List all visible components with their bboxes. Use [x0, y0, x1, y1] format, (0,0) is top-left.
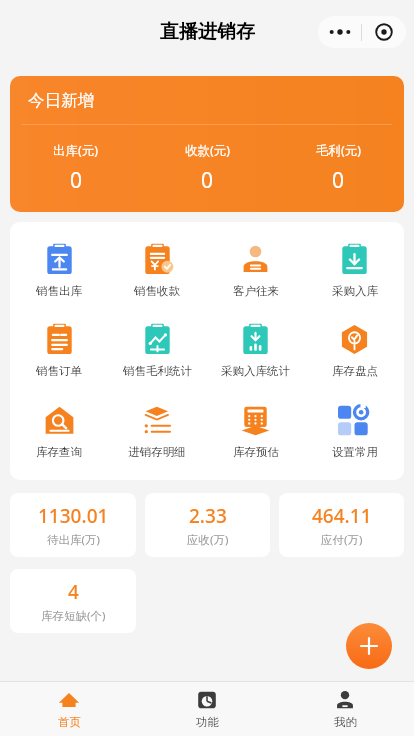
staticText: 销售收款: [134, 284, 180, 298]
button[interactable]: 销售出库: [10, 230, 108, 310]
button[interactable]: 库存盘点: [305, 310, 404, 391]
button[interactable]: 库存预估: [206, 391, 305, 472]
staticText: 直播进销存: [160, 20, 255, 44]
button[interactable]: 我的: [276, 682, 414, 736]
staticText: 设置常用: [332, 445, 378, 459]
button[interactable]: 2.33: [145, 493, 270, 557]
staticText: 库存盘点: [332, 364, 378, 378]
button[interactable]: 销售收款: [108, 230, 206, 310]
staticText: 库存查询: [36, 445, 82, 459]
staticText: 应收(万): [187, 532, 229, 548]
staticText: 464.11: [312, 503, 372, 529]
staticText: 库存短缺(个): [41, 608, 106, 624]
staticText: 客户往来: [233, 284, 279, 298]
button[interactable]: 464.11: [279, 493, 404, 557]
button[interactable]: More options: [318, 16, 361, 48]
staticText: 0: [332, 166, 345, 195]
staticText: 进销存明细: [128, 445, 186, 459]
staticText: 库存预估: [233, 445, 279, 459]
staticText: 采购入库: [332, 284, 378, 298]
staticText: 出库(元): [53, 142, 99, 159]
staticText: 0: [201, 166, 214, 195]
staticText: 销售订单: [36, 364, 82, 378]
button[interactable]: 库存查询: [10, 391, 108, 472]
button[interactable]: 功能: [138, 682, 276, 736]
button[interactable]: 1130.01: [10, 493, 136, 557]
button[interactable]: 今日新增: [10, 76, 404, 212]
button[interactable]: 销售毛利统计: [108, 310, 206, 391]
button[interactable]: 采购入库: [305, 230, 404, 310]
button[interactable]: 4: [10, 569, 136, 633]
staticText: 功能: [196, 715, 219, 729]
staticText: 待出库(万): [47, 532, 100, 548]
button[interactable]: 设置常用: [305, 391, 404, 472]
staticText: 1130.01: [38, 503, 109, 529]
button[interactable]: 采购入库统计: [206, 310, 305, 391]
staticText: 采购入库统计: [221, 364, 290, 378]
staticText: 销售出库: [36, 284, 82, 298]
button[interactable]: 销售订单: [10, 310, 108, 391]
staticText: 应付(万): [321, 532, 363, 548]
staticText: 今日新增: [28, 90, 94, 111]
staticText: 我的: [334, 715, 357, 729]
staticText: 0: [70, 166, 83, 195]
staticText: 2.33: [189, 503, 227, 529]
staticText: 首页: [58, 715, 81, 729]
staticText: 销售毛利统计: [123, 364, 192, 378]
staticText: 收款(元): [185, 142, 231, 159]
staticText: 毛利(元): [316, 142, 362, 159]
button[interactable]: 首页: [0, 682, 138, 736]
button[interactable]: 进销存明细: [108, 391, 206, 472]
staticText: 4: [68, 579, 79, 605]
button[interactable]: Close mini program: [362, 16, 406, 48]
button[interactable]: Add: [346, 623, 392, 669]
button[interactable]: 客户往来: [206, 230, 305, 310]
